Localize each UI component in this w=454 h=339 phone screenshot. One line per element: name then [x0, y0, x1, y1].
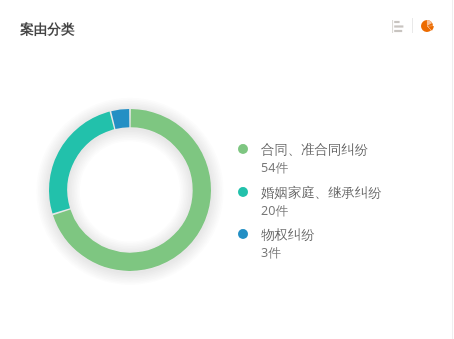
staticText: 54件 — [261, 159, 289, 176]
staticText: 20件 — [261, 202, 289, 219]
button[interactable]: 婚姻家庭、继承纠纷 — [238, 184, 388, 220]
button[interactable]: 物权纠纷 — [238, 226, 388, 262]
staticText: 物权纠纷 — [261, 226, 315, 243]
staticText: 合同、准合同纠纷 — [261, 141, 369, 158]
staticText: 3件 — [261, 244, 281, 261]
button[interactable]: List view — [384, 10, 416, 42]
staticText: 案由分类 — [20, 21, 75, 38]
button[interactable]: Pie chart view — [416, 10, 448, 42]
staticText: 婚姻家庭、继承纠纷 — [261, 184, 382, 201]
button[interactable]: 合同、准合同纠纷 — [238, 141, 388, 177]
